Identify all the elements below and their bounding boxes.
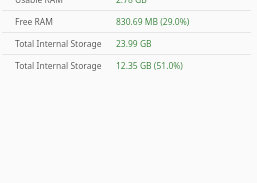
staticText: 830.69 MB (29.0%): [116, 16, 190, 28]
staticText: 12.35 GB (51.0%): [116, 60, 183, 72]
button[interactable]: Free RAM: [0, 11, 257, 32]
button[interactable]: Total Internal Storage: [0, 33, 257, 54]
staticText: 2.78 GB: [116, 0, 147, 6]
staticText: Total Internal Storage: [15, 38, 102, 50]
staticText: 23.99 GB: [116, 38, 152, 50]
staticText: Free RAM: [15, 16, 53, 28]
button[interactable]: Usable RAM: [0, 0, 257, 10]
staticText: Usable RAM: [15, 0, 63, 6]
staticText: Total Internal Storage: [15, 60, 102, 72]
button[interactable]: Total Internal Storage: [0, 55, 257, 76]
